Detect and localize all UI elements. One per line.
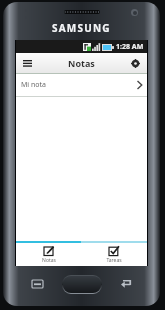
button[interactable]: Back xyxy=(118,276,134,292)
button[interactable]: Open navigation menu xyxy=(20,56,35,71)
staticText: Notas xyxy=(42,257,56,264)
staticText: 1:28 AM xyxy=(116,42,144,52)
staticText: Mi nota xyxy=(21,80,46,90)
button[interactable]: Settings xyxy=(128,56,143,71)
button[interactable]: Tareas xyxy=(81,243,147,266)
staticText: SAMSUNG xyxy=(52,21,111,35)
button[interactable]: Notas xyxy=(16,243,81,266)
button[interactable]: Home xyxy=(62,275,102,294)
staticText: Tareas xyxy=(106,257,122,264)
button[interactable]: Mi nota xyxy=(16,74,147,96)
staticText: Notas xyxy=(68,57,95,69)
button[interactable]: Menu xyxy=(29,276,45,292)
